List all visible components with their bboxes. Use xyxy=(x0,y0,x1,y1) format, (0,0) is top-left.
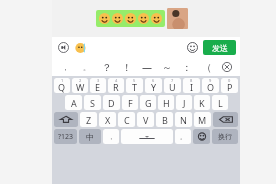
staticText: H xyxy=(163,97,170,109)
button[interactable]: ？ xyxy=(97,58,117,76)
staticText: — xyxy=(142,60,152,74)
staticText: Y xyxy=(151,81,157,93)
button[interactable]: Avatar xyxy=(167,8,188,29)
button[interactable]: 。 xyxy=(76,58,97,76)
button[interactable]: 4 xyxy=(108,78,124,93)
staticText: T xyxy=(132,81,138,93)
staticText: 7 xyxy=(171,78,174,83)
button[interactable]: G xyxy=(140,95,156,110)
staticText: B xyxy=(162,114,168,126)
button[interactable]: 5 xyxy=(126,78,143,93)
staticText: 2 xyxy=(79,78,82,83)
button[interactable]: X xyxy=(99,112,116,127)
staticText: D xyxy=(108,97,115,109)
staticText: C xyxy=(124,114,130,126)
staticText: N xyxy=(180,114,187,126)
staticText: ， xyxy=(108,133,114,141)
staticText: R xyxy=(113,81,119,93)
button[interactable]: L xyxy=(212,95,228,110)
button[interactable]: 0 xyxy=(221,78,238,93)
button[interactable]: V xyxy=(137,112,154,127)
staticText: 4 xyxy=(115,78,118,83)
button[interactable]: N xyxy=(175,112,192,127)
staticText: ！ xyxy=(122,61,132,74)
button[interactable]: Emoji xyxy=(185,40,200,55)
staticText: 换行 xyxy=(218,132,232,141)
button[interactable]: A xyxy=(65,95,82,110)
button[interactable]: Backspace xyxy=(213,112,238,127)
staticText: 。 xyxy=(180,133,186,141)
staticText: V xyxy=(143,114,149,126)
staticText: P xyxy=(227,81,233,93)
staticText: M xyxy=(198,114,207,126)
staticText: Z xyxy=(86,114,92,126)
button[interactable]: 。 xyxy=(175,129,191,144)
staticText: 0 xyxy=(228,78,231,83)
button[interactable]: S xyxy=(84,95,101,110)
button[interactable]: B xyxy=(156,112,173,127)
button[interactable] xyxy=(98,10,163,27)
staticText: L xyxy=(218,97,223,109)
button[interactable]: ， xyxy=(103,129,119,144)
button[interactable]: 3 xyxy=(90,78,106,93)
button[interactable]: ， xyxy=(55,58,76,76)
button[interactable]: Emoji xyxy=(193,129,210,144)
staticText: A xyxy=(71,97,77,109)
staticText: S xyxy=(90,97,95,109)
staticText: J xyxy=(183,97,186,109)
staticText: 3 xyxy=(97,78,100,83)
button[interactable]: Space xyxy=(121,129,173,144)
staticText: W xyxy=(76,81,85,93)
button[interactable]: H xyxy=(158,95,174,110)
button[interactable]: ： xyxy=(177,58,197,76)
button[interactable]: 2 xyxy=(72,78,88,93)
staticText: 6 xyxy=(152,78,155,83)
staticText: 1 xyxy=(61,78,64,83)
button[interactable]: — xyxy=(137,58,157,76)
button[interactable]: 6 xyxy=(145,78,162,93)
button[interactable]: 7 xyxy=(164,78,181,93)
staticText: ？ xyxy=(102,61,112,74)
button[interactable]: 8 xyxy=(183,78,200,93)
staticText: Q xyxy=(58,81,66,93)
staticText: I xyxy=(190,81,194,93)
staticText: O xyxy=(207,81,215,93)
button[interactable]: ！ xyxy=(117,58,137,76)
staticText: 9 xyxy=(209,78,212,83)
staticText: 。 xyxy=(83,63,90,72)
staticText: K xyxy=(199,97,205,109)
staticText: U xyxy=(169,81,176,93)
button[interactable]: 9 xyxy=(202,78,219,93)
button[interactable]: Shift xyxy=(54,112,78,127)
staticText: 5 xyxy=(133,78,136,83)
button[interactable]: ～ xyxy=(157,58,177,76)
staticText: ， xyxy=(62,63,69,72)
button[interactable] xyxy=(75,40,185,55)
staticText: ： xyxy=(182,61,192,74)
button[interactable]: 1 xyxy=(54,78,70,93)
button[interactable]: （ xyxy=(197,58,217,76)
button[interactable]: J xyxy=(176,95,192,110)
button[interactable]: D xyxy=(103,95,120,110)
button[interactable]: 换行 xyxy=(212,129,238,144)
staticText: E xyxy=(95,81,101,93)
staticText: 8 xyxy=(190,78,193,83)
button[interactable]: C xyxy=(118,112,135,127)
button[interactable]: Clear xyxy=(217,58,237,76)
staticText: 发送 xyxy=(212,43,228,53)
button[interactable]: Z xyxy=(80,112,97,127)
button[interactable]: K xyxy=(194,95,210,110)
button[interactable]: F xyxy=(122,95,138,110)
staticText: ?123 xyxy=(58,132,74,142)
button[interactable]: Voice input xyxy=(56,40,71,55)
button[interactable]: M xyxy=(194,112,211,127)
staticText: F xyxy=(128,97,133,109)
staticText: G xyxy=(145,97,152,109)
button[interactable]: 中 xyxy=(79,129,101,144)
staticText: X xyxy=(105,114,111,126)
button[interactable]: ?123 xyxy=(54,129,77,144)
button[interactable]: 发送 xyxy=(203,40,236,55)
staticText: （ xyxy=(202,61,212,74)
staticText: 中 xyxy=(86,132,94,142)
staticText: ～ xyxy=(162,61,172,74)
